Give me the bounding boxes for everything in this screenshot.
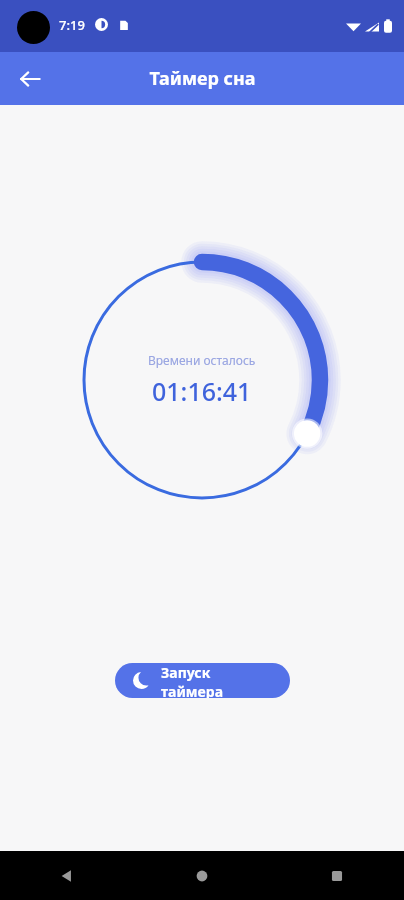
staticText: Таймер сна xyxy=(149,66,256,91)
button[interactable]: Back xyxy=(0,851,134,900)
button[interactable]: Home xyxy=(134,851,269,900)
button[interactable]: Recents xyxy=(269,851,404,900)
staticText: 7:19 xyxy=(59,16,85,34)
button[interactable]: Back xyxy=(10,59,50,99)
staticText: Запуск таймера xyxy=(161,663,272,698)
staticText: Времени осталось xyxy=(148,352,256,368)
staticText: 01:16:41 xyxy=(152,374,252,408)
button[interactable]: Запуск таймера xyxy=(115,663,290,698)
